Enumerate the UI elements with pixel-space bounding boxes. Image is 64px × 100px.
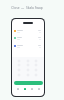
button[interactable]: Key — [34, 59, 38, 63]
button[interactable]: Key — [17, 59, 21, 63]
button[interactable] — [14, 35, 41, 41]
button[interactable]: Home — [15, 86, 20, 91]
button[interactable]: Key — [26, 63, 30, 67]
button[interactable]: Key — [17, 68, 21, 72]
button[interactable]: Key — [34, 68, 38, 72]
button[interactable] — [14, 28, 41, 34]
button[interactable]: Key — [26, 59, 30, 63]
button[interactable]: Continue — [14, 81, 43, 85]
staticText: Close — Skala Swap — [8, 6, 46, 10]
button[interactable]: Key — [34, 73, 38, 77]
button[interactable]: Key — [26, 68, 30, 72]
button[interactable] — [14, 43, 41, 49]
button[interactable]: Swap — [22, 86, 27, 91]
button[interactable]: Activity — [29, 86, 34, 91]
button[interactable]: Key — [34, 63, 38, 67]
button[interactable]: Key — [17, 73, 21, 77]
button[interactable]: Key — [17, 63, 21, 67]
button[interactable]: Key — [26, 73, 30, 77]
button[interactable]: Profile — [36, 86, 41, 91]
